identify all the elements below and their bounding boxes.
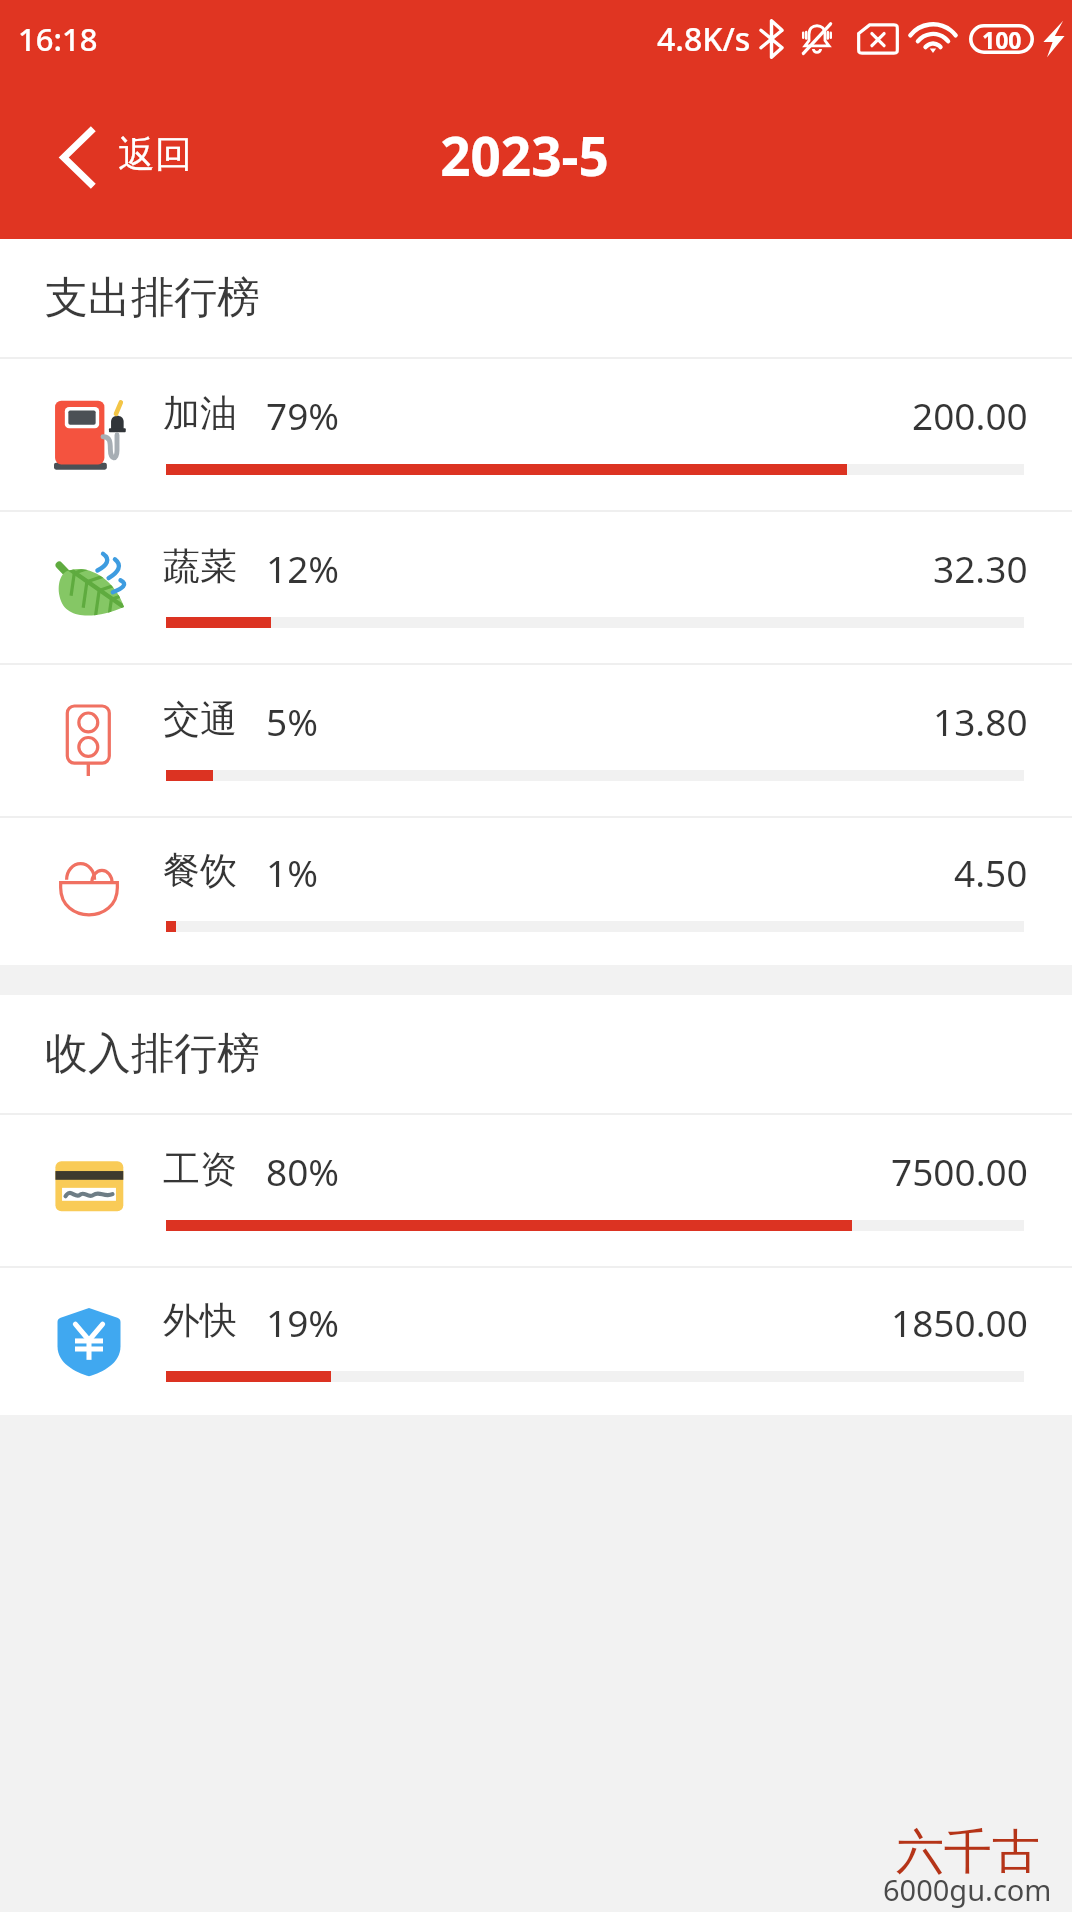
- button[interactable]: 交通: [0, 665, 1072, 816]
- staticText: 1%: [266, 847, 318, 891]
- staticText: 交通: [163, 696, 237, 740]
- staticText: 100: [982, 24, 1022, 54]
- button[interactable]: 餐饮: [0, 818, 1072, 965]
- staticText: 19%: [266, 1297, 340, 1341]
- staticText: 79%: [266, 390, 340, 434]
- staticText: 6000gu.com: [883, 1870, 1052, 1909]
- staticText: 5%: [266, 696, 318, 740]
- staticText: 支出排行榜: [45, 271, 260, 325]
- staticText: 餐饮: [163, 847, 237, 891]
- button[interactable]: 返回: [0, 113, 226, 202]
- staticText: 2023-5: [440, 119, 609, 191]
- staticText: 1850.00: [891, 1297, 1028, 1341]
- staticText: 7500.00: [891, 1146, 1028, 1190]
- staticText: 32.30: [933, 543, 1028, 587]
- staticText: 80%: [266, 1146, 340, 1190]
- staticText: 加油: [163, 390, 237, 434]
- staticText: 16:18: [18, 18, 98, 60]
- staticText: 六千古: [896, 1822, 1040, 1882]
- staticText: 外快: [163, 1297, 237, 1341]
- other: 返回: [61, 127, 95, 188]
- staticText: 12%: [266, 543, 340, 587]
- staticText: 4.8K/s: [657, 17, 751, 61]
- button[interactable]: 外快: [0, 1268, 1072, 1415]
- button[interactable]: 工资: [0, 1115, 1072, 1266]
- button[interactable]: 蔬菜: [0, 512, 1072, 663]
- staticText: 200.00: [912, 390, 1028, 434]
- staticText: 4.50: [954, 847, 1028, 891]
- staticText: 工资: [163, 1146, 237, 1190]
- staticText: 收入排行榜: [45, 1027, 260, 1081]
- staticText: 蔬菜: [163, 543, 237, 587]
- staticText: 返回: [118, 131, 192, 178]
- staticText: 13.80: [933, 696, 1028, 740]
- button[interactable]: 加油: [0, 359, 1072, 510]
